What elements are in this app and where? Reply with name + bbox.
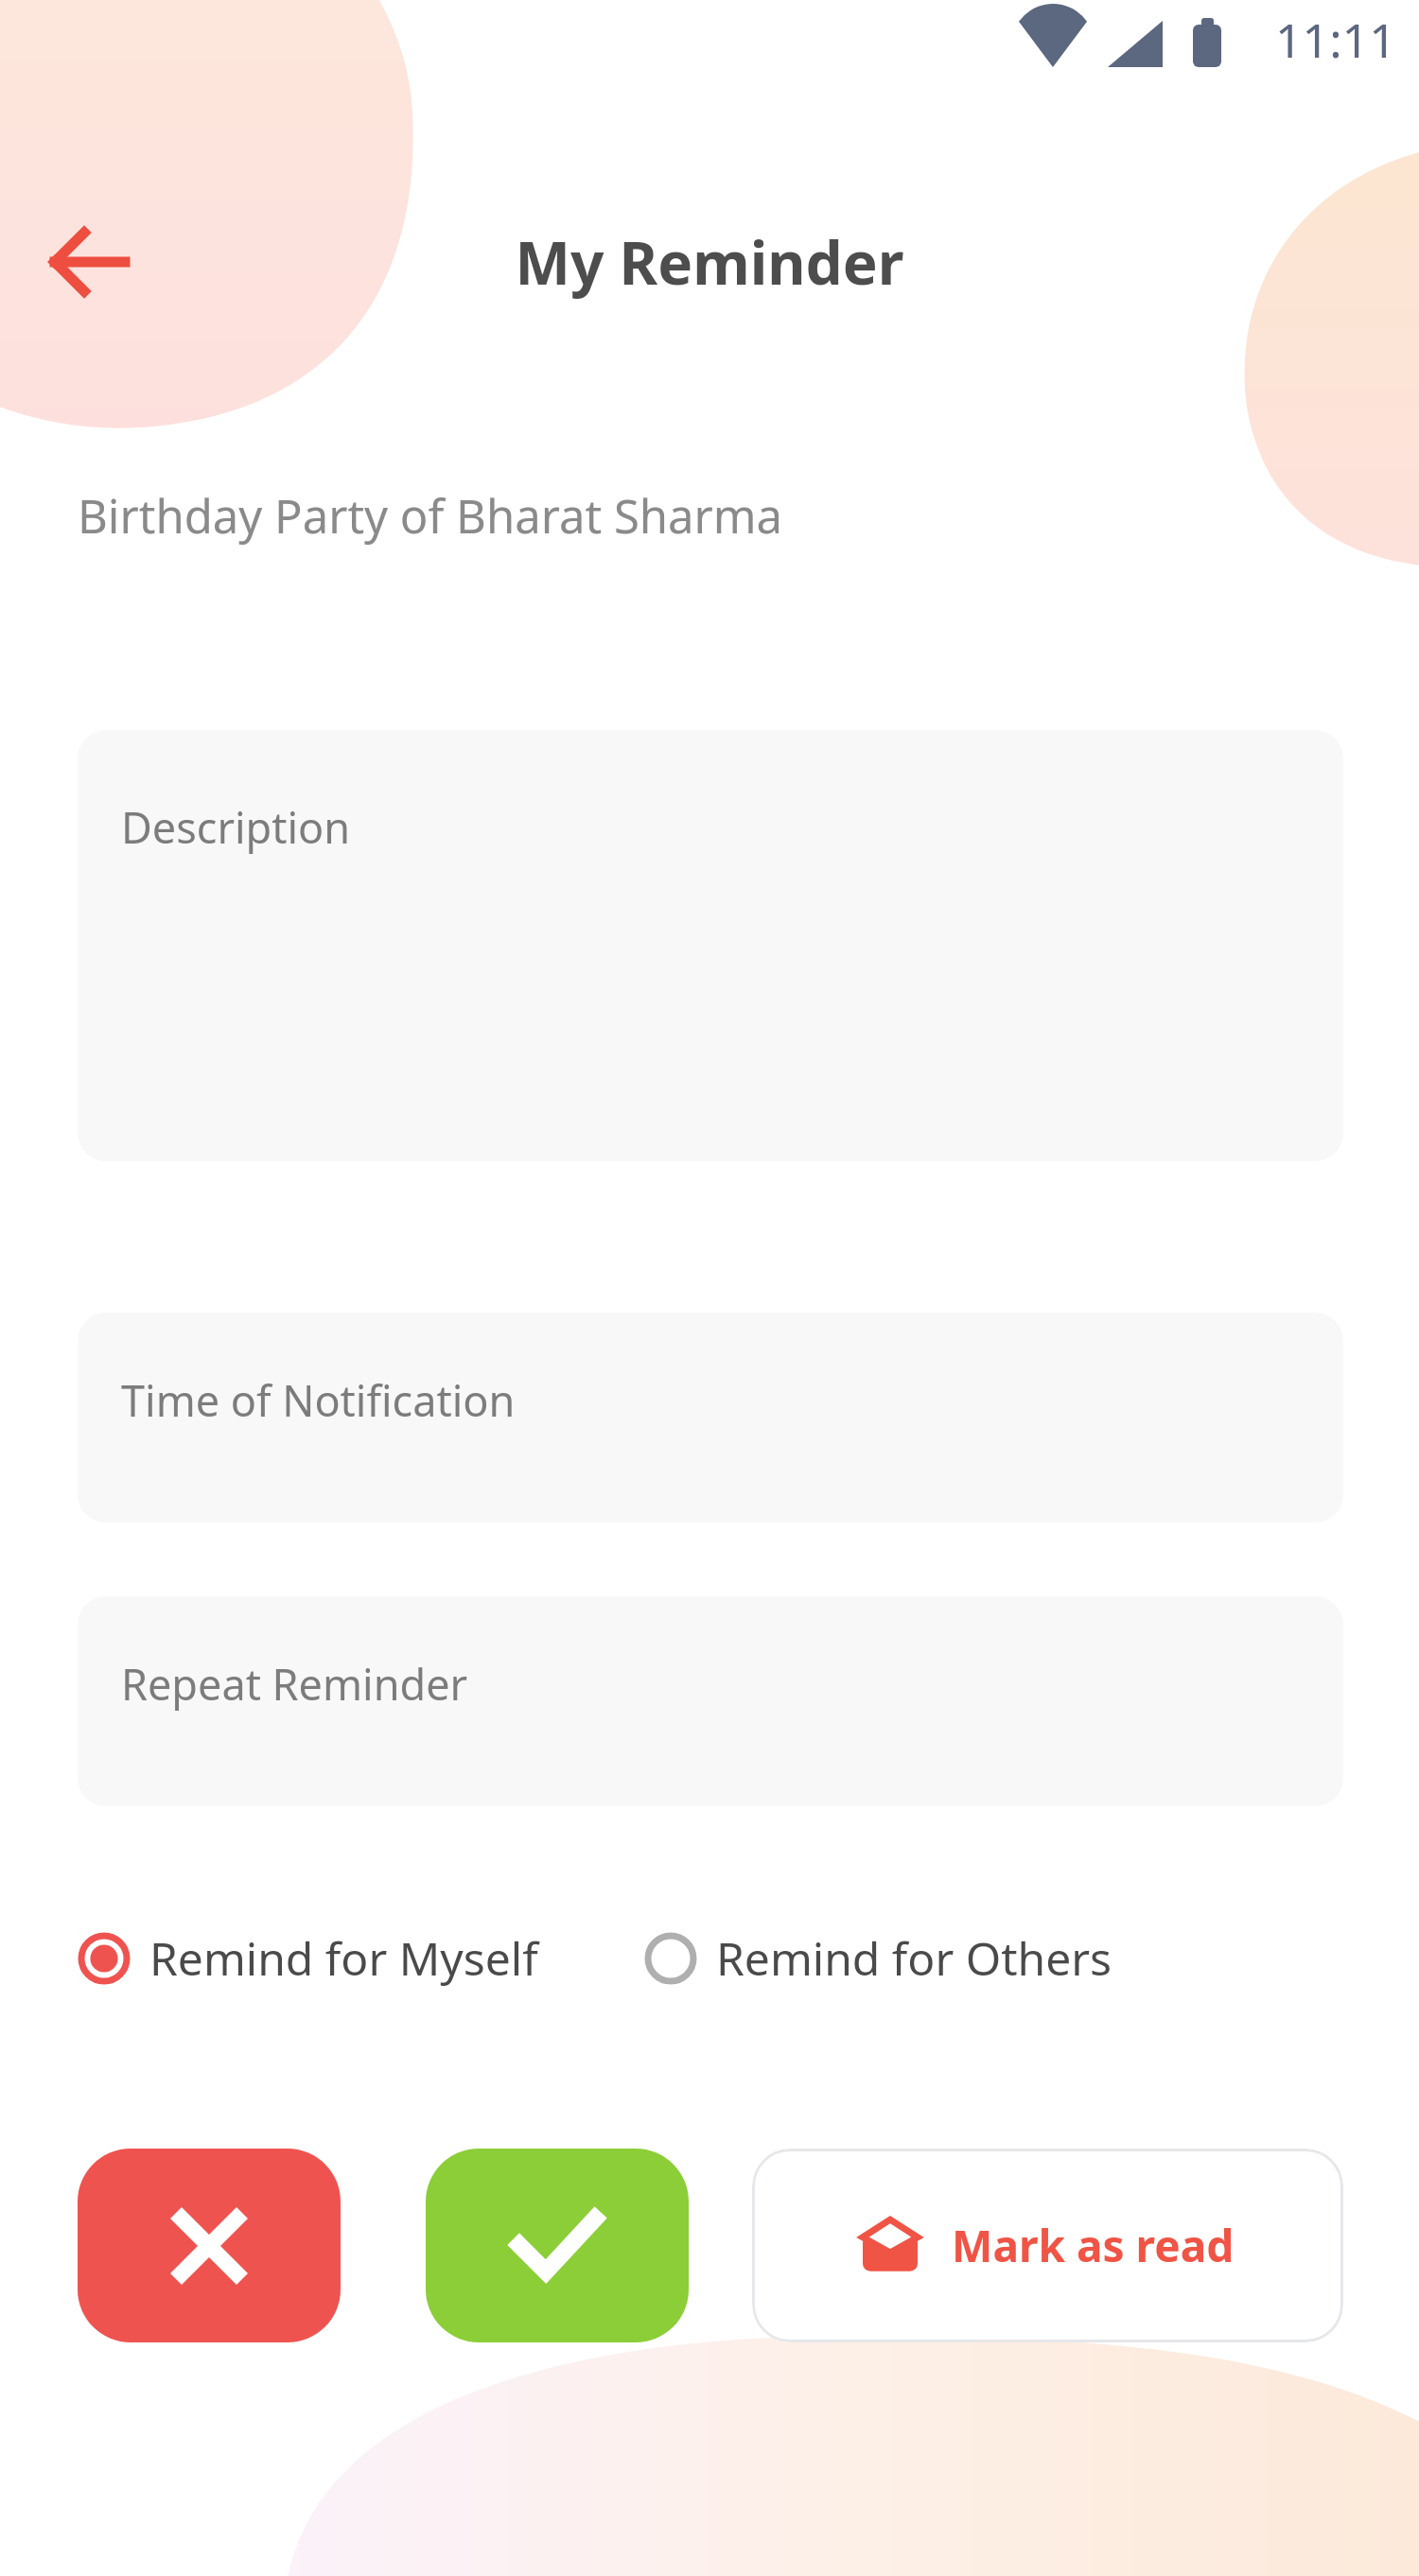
- button[interactable]: Confirm reminder: [426, 2149, 689, 2342]
- staticText: Description: [121, 798, 351, 856]
- button[interactable]: Mark as read: [752, 2149, 1343, 2342]
- staticText: 11:11: [1275, 8, 1396, 72]
- staticText: Remind for Others: [716, 1927, 1112, 1989]
- button[interactable]: Time of Notification: [78, 1313, 1343, 1523]
- button[interactable]: Remind for Others: [633, 1918, 1124, 1998]
- staticText: Mark as read: [952, 2216, 1235, 2275]
- staticText: Time of Notification: [121, 1371, 516, 1429]
- button[interactable]: Description: [78, 730, 1343, 1161]
- staticText: My Reminder: [0, 222, 1419, 302]
- button[interactable]: Back: [28, 203, 153, 321]
- staticText: Repeat Reminder: [121, 1655, 468, 1713]
- staticText: Remind for Myself: [149, 1927, 538, 1989]
- button[interactable]: Repeat Reminder: [78, 1596, 1343, 1806]
- staticText: Birthday Party of Bharat Sharma: [78, 484, 783, 548]
- button[interactable]: Remind for Myself: [66, 1918, 550, 1998]
- button[interactable]: Delete reminder: [78, 2149, 341, 2342]
